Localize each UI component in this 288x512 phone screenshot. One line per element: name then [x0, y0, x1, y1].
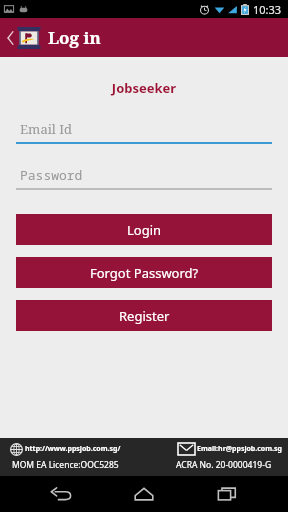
staticText: Register — [119, 307, 170, 325]
staticText: 10:33 — [253, 2, 282, 17]
staticText: Jobseeker — [0, 79, 288, 97]
staticText: Password — [20, 166, 83, 184]
button[interactable]: Forgot Password? — [16, 257, 272, 288]
staticText: ACRA No. 20-0000419-G — [176, 459, 272, 471]
button[interactable]: Email Id — [16, 118, 272, 140]
staticText: MOM EA Licence:OOC5285 — [12, 459, 119, 471]
staticText: Forgot Password? — [90, 264, 199, 282]
button[interactable]: Back — [39, 476, 83, 512]
staticText: Login — [127, 221, 162, 239]
button[interactable]: Back — [5, 23, 15, 53]
staticText: Email Id — [20, 120, 73, 138]
staticText: Log in — [48, 26, 101, 49]
button[interactable]: Register — [16, 300, 272, 331]
button[interactable]: Login — [16, 214, 272, 245]
button[interactable]: Home — [122, 476, 166, 512]
button[interactable]: Password — [16, 164, 272, 186]
button[interactable]: Email:hr@ppsjob.com.sg — [197, 444, 282, 454]
button[interactable]: Recent apps — [205, 476, 249, 512]
button[interactable]: http://www.ppsjob.com.sg/ — [25, 444, 121, 454]
